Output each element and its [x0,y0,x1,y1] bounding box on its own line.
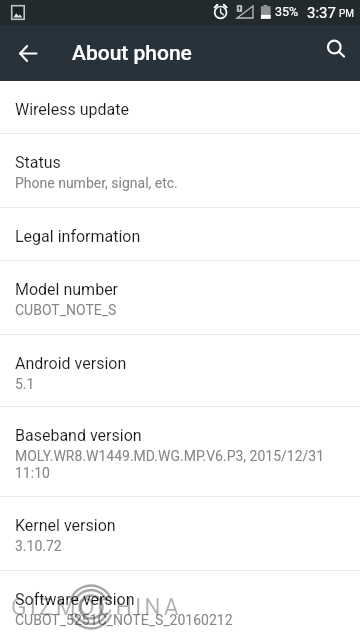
button[interactable]: Search [315,28,359,72]
staticText: PM [339,8,355,20]
staticText: CUBOT_5251C_NOTE_S_20160212 [15,612,233,628]
button[interactable]: Android version [0,335,360,407]
staticText: Wireless update [15,100,129,119]
button[interactable]: Kernel version [0,497,360,571]
button[interactable]: Status [0,134,360,208]
staticText: Legal information [15,227,141,246]
button[interactable]: Back [4,29,52,77]
staticText: Phone number, signal, etc. [15,175,178,191]
staticText: 5.1 [15,376,35,392]
staticText: GIZMOCHINA [11,594,182,621]
staticText: Status [15,153,61,172]
staticText: 3.10.72 [15,538,62,554]
staticText: Android version [15,354,127,373]
button[interactable]: Wireless update [0,81,360,134]
button[interactable]: Software version [0,571,360,640]
staticText: Model number [15,280,119,299]
staticText: CUBOT_NOTE_S [15,302,117,318]
staticText: Kernel version [15,516,116,535]
staticText: 3:37 [307,4,336,22]
button[interactable]: Legal information [0,208,360,261]
button[interactable]: Baseband version [0,407,360,497]
button[interactable]: Model number [0,261,360,335]
staticText: Baseband version [15,426,142,445]
staticText: Software version [15,590,135,609]
staticText: MOLY.WR8.W1449.MD.WG.MP.V6.P3, 2015/12/3… [15,448,325,482]
staticText: About phone [72,41,192,66]
staticText: 35% [275,4,299,19]
